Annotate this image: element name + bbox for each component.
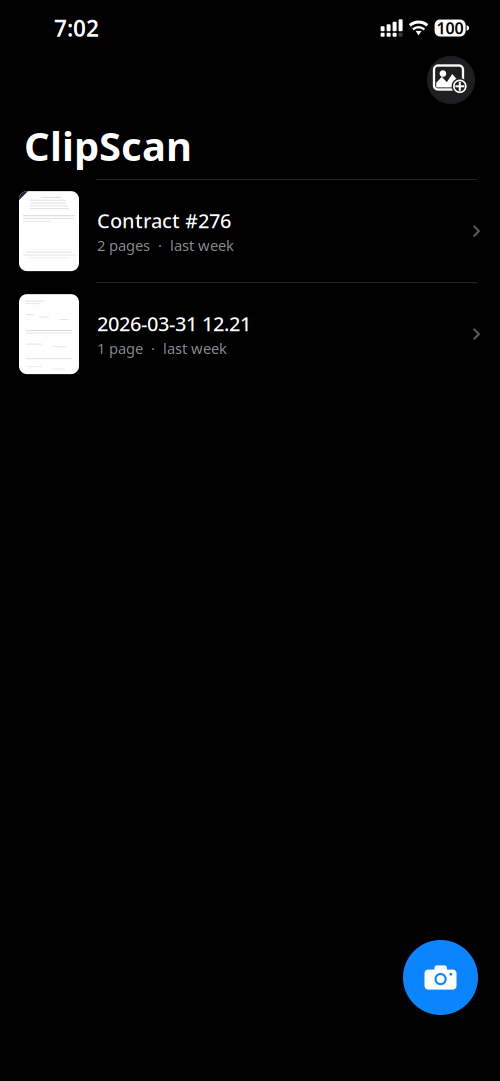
button[interactable]: Import from Photos [427, 56, 475, 104]
staticText: ClipScan [24, 119, 192, 172]
button[interactable]: 2026-03-31 12.21 [0, 283, 500, 385]
button[interactable]: Contract #276 [0, 180, 500, 282]
staticText: Contract #276 [97, 207, 231, 234]
button[interactable]: Scan document [403, 940, 478, 1015]
staticText: 2026-03-31 12.21 [97, 310, 251, 337]
staticText: 1 page · last week [97, 339, 227, 358]
staticText: 2 pages · last week [97, 236, 234, 255]
staticText: 100 [437, 17, 464, 39]
staticText: 7:02 [54, 13, 99, 43]
